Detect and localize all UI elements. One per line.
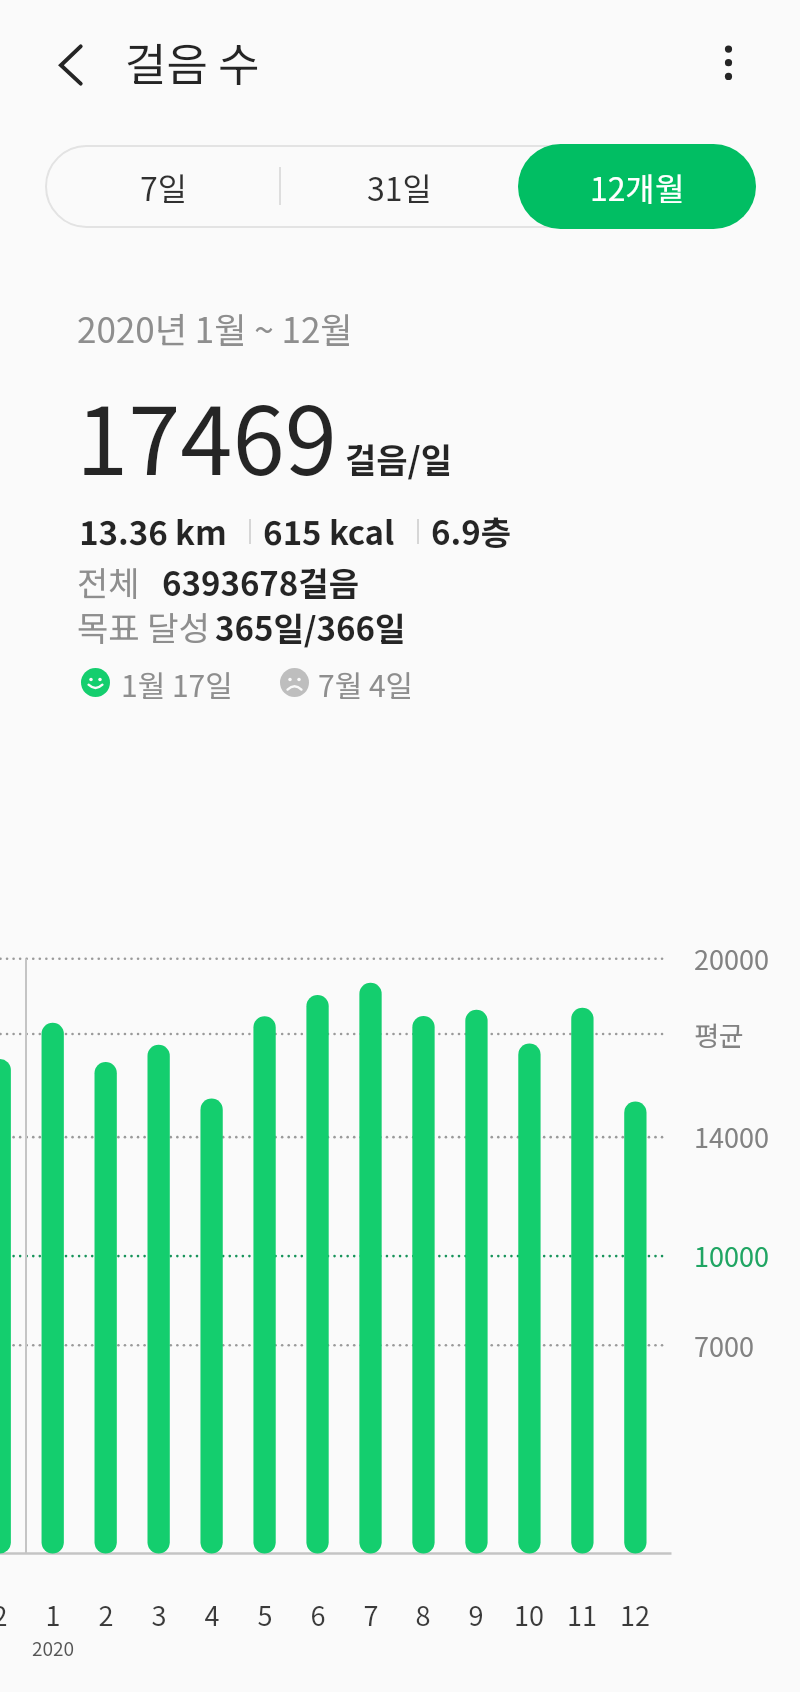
staticText: 1월 17일 <box>121 662 233 705</box>
staticText: 615 kcal <box>263 507 395 555</box>
staticText: 2020 <box>23 1634 83 1662</box>
staticText: 11 <box>552 1595 612 1634</box>
staticText: 31일 <box>367 164 432 210</box>
button[interactable]: 7일 <box>45 145 282 228</box>
button[interactable]: More options <box>703 40 751 88</box>
staticText: 3 <box>129 1595 189 1634</box>
staticText: 6 <box>288 1595 348 1634</box>
button[interactable]: 31일 <box>281 145 518 228</box>
staticText: 5 <box>235 1595 295 1634</box>
staticText: 17469 <box>76 366 337 502</box>
staticText: 10 <box>499 1595 559 1634</box>
staticText: 7000 <box>694 1326 754 1365</box>
staticText: 목표 달성 <box>77 602 210 651</box>
staticText: 13.36 km <box>79 507 227 555</box>
staticText: 4 <box>182 1595 242 1634</box>
staticText: 14000 <box>694 1117 769 1156</box>
staticText: 12개월 <box>590 164 685 210</box>
staticText: 1 <box>23 1595 83 1634</box>
staticText: 평균 <box>694 1015 744 1054</box>
staticText: 6393678걸음 <box>162 558 360 606</box>
staticText: 6.9층 <box>431 507 512 555</box>
staticText: 20000 <box>694 939 769 978</box>
button[interactable]: Back <box>34 40 106 88</box>
staticText: 걸음/일 <box>345 434 452 483</box>
staticText: 전체 <box>77 557 140 606</box>
staticText: 걸음 수 <box>125 29 260 94</box>
staticText: 7일 <box>140 164 188 210</box>
staticText: 7월 4일 <box>318 662 414 705</box>
staticText: 10000 <box>694 1236 769 1275</box>
staticText: 7 <box>341 1595 401 1634</box>
staticText: 8 <box>393 1595 453 1634</box>
button[interactable]: 12개월 <box>518 144 756 229</box>
staticText: 2 <box>76 1595 136 1634</box>
staticText: 12 <box>605 1595 665 1634</box>
staticText: 9 <box>446 1595 506 1634</box>
staticText: 365일/366일 <box>215 603 406 651</box>
staticText: 2020년 1월 ~ 12월 <box>77 302 353 353</box>
staticText: 2 <box>0 1595 30 1634</box>
